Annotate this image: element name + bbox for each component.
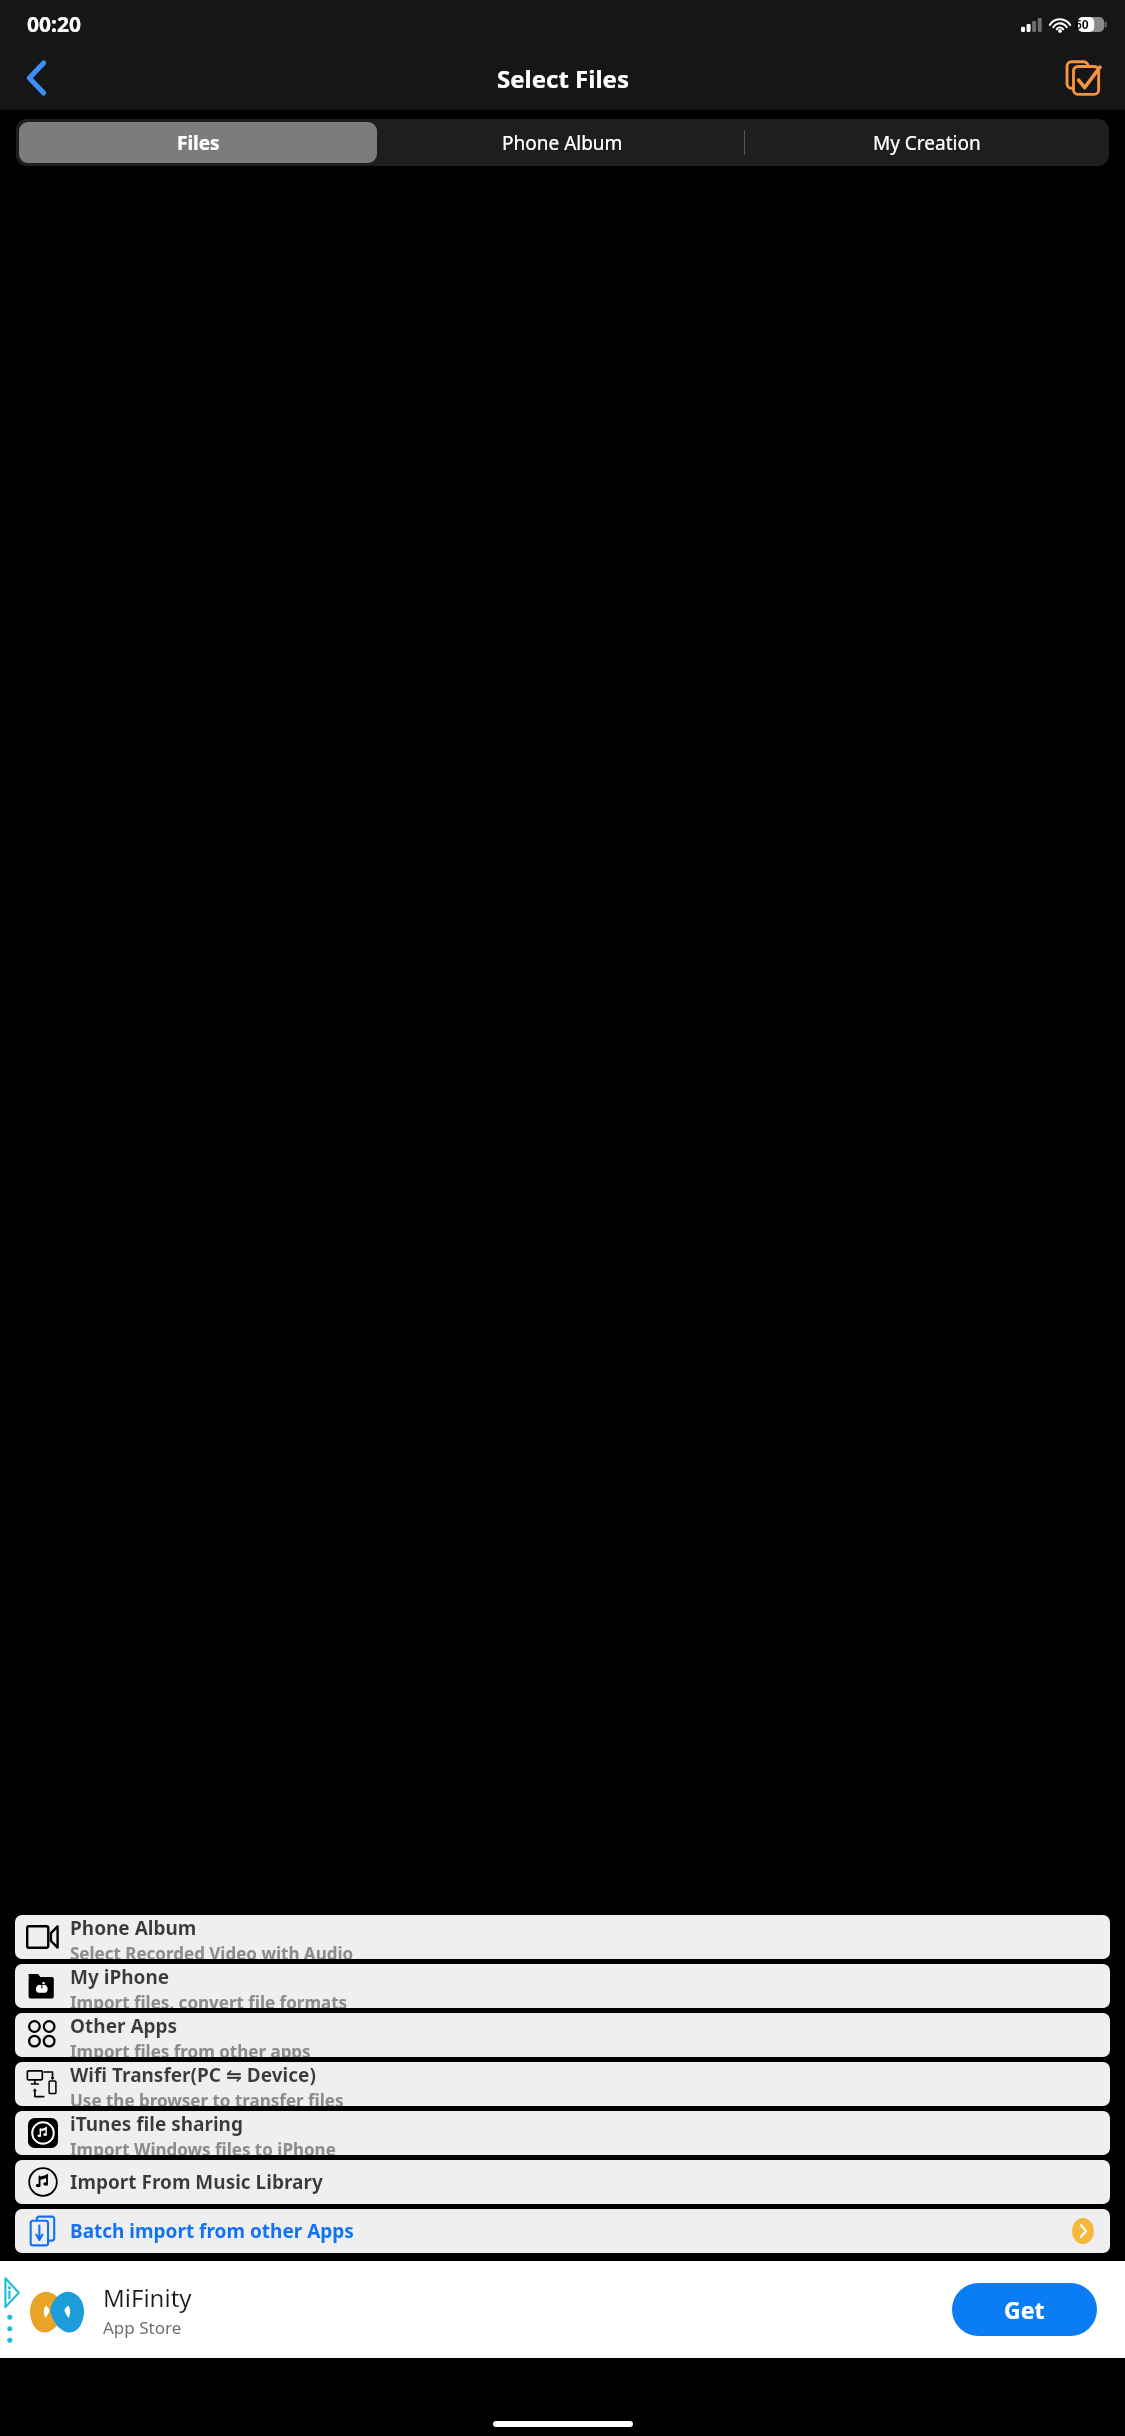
staticText: Select Recorded Video with Audio bbox=[70, 1942, 354, 1959]
button[interactable]: Other Apps bbox=[15, 2013, 1110, 2057]
button[interactable]: Phone Album bbox=[15, 1915, 1110, 1959]
staticText: My Creation bbox=[873, 130, 981, 156]
staticText: Other Apps bbox=[70, 2013, 178, 2039]
button[interactable]: My iPhone bbox=[15, 1964, 1110, 2008]
button[interactable]: Wifi Transfer(PC ⇋ Device) bbox=[15, 2062, 1110, 2106]
staticText: 60 bbox=[1075, 16, 1089, 32]
staticText: Phone Album bbox=[502, 130, 623, 156]
staticText: MiFinity bbox=[103, 2281, 192, 2314]
staticText: Get bbox=[1004, 2294, 1045, 2325]
button[interactable]: Phone Album bbox=[380, 119, 744, 166]
button[interactable]: Back bbox=[8, 50, 64, 106]
staticText: Wifi Transfer(PC ⇋ Device) bbox=[70, 2062, 316, 2088]
button[interactable]: MiFinity bbox=[0, 2261, 1125, 2358]
staticText: 00:20 bbox=[27, 10, 81, 39]
button[interactable]: iTunes file sharing bbox=[15, 2111, 1110, 2155]
staticText: Import Windows files to iPhone bbox=[70, 2138, 336, 2155]
staticText: App Store bbox=[103, 2316, 182, 2339]
staticText: Import From Music Library bbox=[70, 2169, 323, 2195]
staticText: Use the browser to transfer files bbox=[70, 2089, 344, 2106]
staticText: Select Files bbox=[497, 62, 629, 95]
button[interactable]: Get bbox=[952, 2283, 1097, 2336]
staticText: Files bbox=[177, 130, 220, 156]
button[interactable]: Files bbox=[19, 122, 377, 163]
staticText: iTunes file sharing bbox=[70, 2111, 243, 2137]
staticText: Batch import from other Apps bbox=[70, 2218, 354, 2244]
staticText: Import files from other apps bbox=[70, 2040, 311, 2057]
staticText: Phone Album bbox=[70, 1915, 197, 1941]
button[interactable]: My Creation bbox=[745, 119, 1109, 166]
button[interactable]: Batch import from other Apps bbox=[15, 2209, 1110, 2253]
button[interactable]: Import From Music Library bbox=[15, 2160, 1110, 2204]
staticText: My iPhone bbox=[70, 1964, 170, 1990]
button[interactable]: Select all bbox=[1055, 50, 1111, 106]
staticText: Import files, convert file formats bbox=[70, 1991, 348, 2008]
